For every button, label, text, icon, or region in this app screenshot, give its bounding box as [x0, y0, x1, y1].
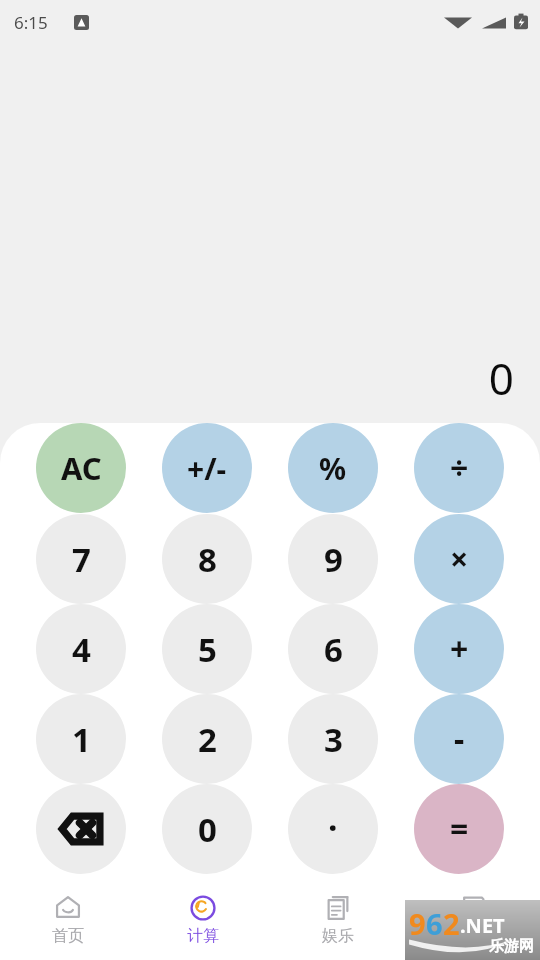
staticText: 7 [72, 537, 91, 582]
staticText: % [319, 448, 347, 489]
button[interactable]: 8 [162, 514, 252, 604]
button[interactable]: 娱乐 [270, 885, 405, 960]
staticText: AC [61, 447, 102, 489]
staticText: - [454, 717, 465, 761]
staticText: .NET [460, 912, 505, 939]
button[interactable]: · [288, 784, 378, 874]
button[interactable]: 计算 [135, 885, 270, 960]
button[interactable]: 2 [162, 694, 252, 784]
staticText: 5 [198, 627, 217, 672]
staticText: 6 [324, 627, 343, 672]
staticText: 娱乐 [322, 926, 354, 946]
staticText: + [450, 627, 469, 671]
button[interactable]: +/- [162, 423, 252, 513]
button[interactable]: 6 [288, 604, 378, 694]
staticText: +/- [187, 448, 227, 489]
button[interactable]: ÷ [414, 423, 504, 513]
staticText: 首页 [52, 926, 84, 946]
staticText: 8 [198, 537, 217, 582]
button[interactable]: 我的 [405, 885, 540, 960]
staticText: 乐游网 [489, 937, 534, 956]
button[interactable]: 0 [162, 784, 252, 874]
button[interactable]: × [414, 514, 504, 604]
button[interactable]: % [288, 423, 378, 513]
staticText: = [450, 807, 469, 851]
button[interactable]: 4 [36, 604, 126, 694]
staticText: × [450, 537, 469, 581]
button[interactable]: 5 [162, 604, 252, 694]
staticText: 6:15 [14, 11, 48, 34]
staticText: 2 [198, 717, 217, 762]
staticText: 9 [324, 537, 343, 582]
button[interactable]: AC [36, 423, 126, 513]
staticText: 4 [72, 627, 91, 672]
staticText: · [328, 804, 338, 850]
staticText: 9 [409, 904, 426, 943]
staticText: 2 [443, 904, 460, 943]
button[interactable]: - [414, 694, 504, 784]
staticText: 0 [488, 348, 514, 408]
button[interactable]: 9 [288, 514, 378, 604]
button[interactable]: = [414, 784, 504, 874]
staticText: ÷ [450, 446, 469, 490]
staticText: 0 [198, 807, 217, 852]
button[interactable]: Backspace [36, 784, 126, 874]
staticText: 1 [72, 717, 91, 762]
button[interactable]: + [414, 604, 504, 694]
button[interactable]: 7 [36, 514, 126, 604]
button[interactable]: 3 [288, 694, 378, 784]
staticText: 3 [324, 717, 343, 762]
button[interactable]: 首页 [0, 885, 135, 960]
staticText: 我的 [457, 926, 489, 946]
button[interactable]: 1 [36, 694, 126, 784]
staticText: 计算 [187, 926, 219, 946]
staticText: 6 [426, 904, 443, 943]
